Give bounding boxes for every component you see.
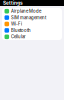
staticText: Cellular bbox=[11, 34, 26, 39]
staticText: Settings bbox=[3, 0, 23, 6]
button[interactable]: Cellular bbox=[2, 34, 62, 40]
button[interactable]: Airplane Mode bbox=[2, 8, 62, 14]
staticText: Wi-Fi bbox=[11, 21, 22, 27]
staticText: SIM management bbox=[11, 15, 46, 20]
button[interactable]: Wi-Fi bbox=[2, 21, 62, 27]
button[interactable]: Bluetooth bbox=[2, 27, 62, 34]
button[interactable]: SIM management bbox=[2, 14, 62, 21]
staticText: Airplane Mode bbox=[11, 9, 41, 14]
staticText: Bluetooth bbox=[11, 28, 31, 33]
